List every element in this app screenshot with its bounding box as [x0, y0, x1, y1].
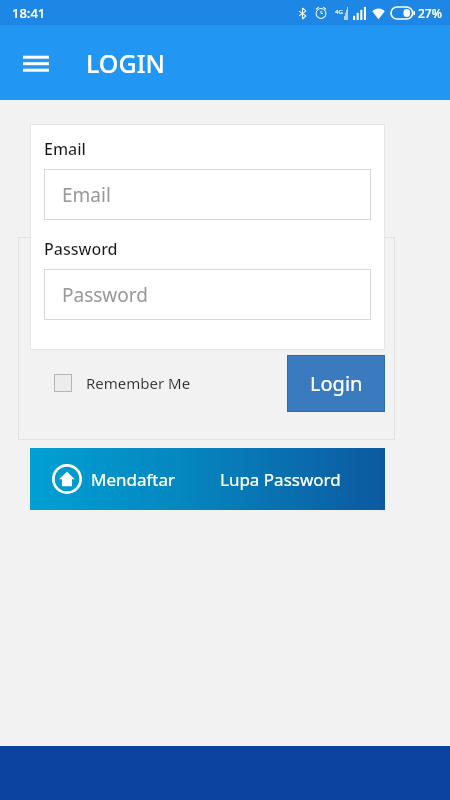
staticText: 27%	[418, 5, 442, 21]
staticText: 4G	[335, 8, 343, 16]
button[interactable]: Email	[44, 169, 371, 220]
button[interactable]: Mendaftar	[52, 464, 176, 494]
button[interactable]: Password	[44, 269, 371, 320]
button[interactable]: Remember Me	[54, 373, 191, 393]
button[interactable]: Open navigation menu	[14, 41, 58, 85]
staticText: Mendaftar	[91, 468, 176, 491]
staticText: Email	[62, 182, 111, 208]
staticText: LOGIN	[86, 46, 165, 80]
staticText: Password	[44, 238, 118, 260]
staticText: Email	[44, 138, 86, 160]
staticText: Password	[62, 282, 148, 308]
staticText: Login	[310, 370, 363, 397]
staticText: Lupa Password	[220, 468, 341, 491]
button[interactable]: Login	[287, 355, 385, 412]
staticText: Remember Me	[86, 373, 191, 393]
button[interactable]: Lupa Password	[220, 468, 341, 491]
staticText: 18:41	[12, 4, 46, 22]
